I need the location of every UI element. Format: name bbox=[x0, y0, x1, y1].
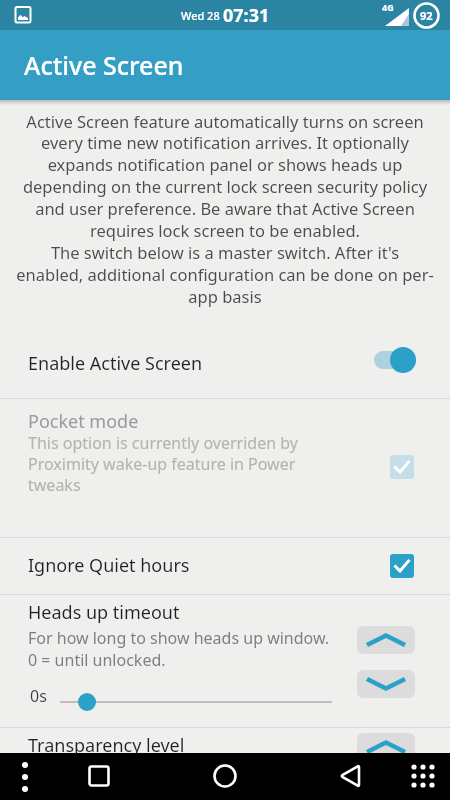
staticText: Transparency level bbox=[28, 733, 185, 758]
button[interactable] bbox=[390, 554, 414, 578]
button[interactable] bbox=[409, 762, 437, 790]
button[interactable]: Ignore Quiet hours bbox=[0, 537, 450, 594]
staticText: 0s bbox=[30, 685, 47, 707]
staticText: 4G bbox=[382, 1, 394, 13]
staticText: 92 bbox=[420, 8, 433, 23]
staticText: Active Screen bbox=[24, 48, 184, 82]
staticText: Wed 28 bbox=[181, 8, 223, 23]
staticText: 07:31 bbox=[223, 3, 270, 28]
staticText: For how long to show heads up window. 0 … bbox=[28, 627, 330, 671]
button[interactable] bbox=[211, 762, 239, 790]
button[interactable] bbox=[357, 670, 415, 698]
staticText: Active Screen feature automatically turn… bbox=[6, 110, 444, 308]
button[interactable] bbox=[78, 693, 96, 711]
button[interactable]: Pocket mode bbox=[0, 398, 450, 536]
button[interactable] bbox=[357, 733, 415, 758]
staticText: Heads up timeout bbox=[28, 600, 180, 625]
staticText: Pocket mode bbox=[28, 409, 139, 434]
button[interactable] bbox=[16, 759, 34, 795]
button[interactable] bbox=[85, 762, 113, 790]
button[interactable]: Active Screen bbox=[24, 48, 184, 82]
staticText: Ignore Quiet hours bbox=[28, 553, 190, 578]
button[interactable] bbox=[357, 626, 415, 654]
button[interactable]: Enable Active Screen bbox=[0, 330, 450, 397]
button[interactable] bbox=[336, 762, 364, 790]
button[interactable] bbox=[390, 455, 414, 479]
staticText: Enable Active Screen bbox=[28, 351, 203, 376]
staticText: This option is currently overriden by Pr… bbox=[28, 432, 298, 496]
